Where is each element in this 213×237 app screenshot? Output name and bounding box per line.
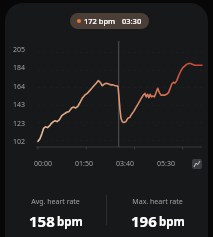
staticText: 05:30 xyxy=(157,159,175,169)
button[interactable]: Avg. heart rate xyxy=(5,195,106,233)
staticText: 102 xyxy=(13,137,26,147)
staticText: bpm xyxy=(159,214,185,230)
button[interactable]: 172 bpm xyxy=(70,13,149,29)
staticText: 123 xyxy=(13,119,26,129)
button[interactable]: Max. heart rate xyxy=(107,195,208,233)
staticText: 205 xyxy=(13,45,26,55)
staticText: Avg. heart rate xyxy=(31,197,80,207)
staticText: 158 xyxy=(29,211,55,231)
staticText: bpm xyxy=(57,214,83,230)
staticText: 03:30 xyxy=(122,16,142,26)
staticText: 143 xyxy=(13,100,26,110)
staticText: 172 bpm xyxy=(84,16,116,26)
staticText: 164 xyxy=(13,82,26,92)
staticText: 196 xyxy=(131,211,157,231)
staticText: 03:40 xyxy=(116,159,134,169)
staticText: 00:00 xyxy=(34,159,52,169)
staticText: 184 xyxy=(13,63,26,73)
staticText: 01:50 xyxy=(75,159,93,169)
button[interactable]: Change chart type xyxy=(192,159,202,169)
staticText: Max. heart rate xyxy=(132,197,183,207)
